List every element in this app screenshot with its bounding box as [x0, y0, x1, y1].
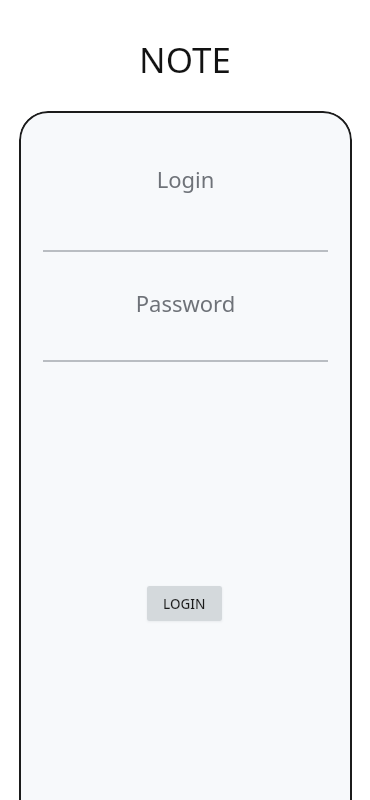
button[interactable]: Login [147, 586, 222, 621]
staticText: Password [43, 288, 328, 318]
staticText: Login [43, 164, 328, 194]
button[interactable]: Password [43, 276, 328, 362]
staticText: LOGIN [163, 595, 206, 613]
button[interactable]: Login [43, 150, 328, 252]
staticText: NOTE [0, 36, 370, 84]
